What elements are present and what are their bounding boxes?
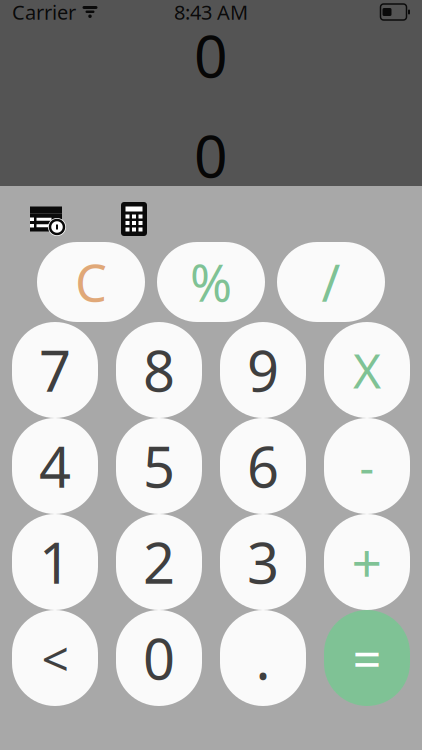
staticText: 7 xyxy=(39,333,71,407)
button[interactable]: . xyxy=(220,610,306,706)
button[interactable]: 9 xyxy=(220,322,306,418)
button[interactable]: 8 xyxy=(116,322,202,418)
button[interactable]: = xyxy=(324,610,410,706)
button[interactable]: 0 xyxy=(116,610,202,706)
staticText: 0 xyxy=(143,621,175,695)
staticText: + xyxy=(351,527,382,597)
staticText: C xyxy=(75,248,107,316)
button[interactable]: 6 xyxy=(220,418,306,514)
button[interactable]: History xyxy=(26,202,66,236)
button[interactable]: % xyxy=(157,242,265,322)
button[interactable]: C xyxy=(37,242,145,322)
staticText: % xyxy=(190,248,232,316)
staticText: 4 xyxy=(39,429,71,503)
button[interactable]: X xyxy=(324,322,410,418)
button[interactable]: < xyxy=(12,610,98,706)
staticText: 9 xyxy=(247,333,279,407)
staticText: 3 xyxy=(247,525,279,599)
staticText: 6 xyxy=(247,429,279,503)
staticText: 8:43 AM xyxy=(174,0,248,25)
staticText: Carrier xyxy=(12,0,76,25)
staticText: 2 xyxy=(143,525,175,599)
button[interactable]: 4 xyxy=(12,418,98,514)
button[interactable]: 3 xyxy=(220,514,306,610)
staticText: . xyxy=(255,621,270,695)
button[interactable]: - xyxy=(324,418,410,514)
staticText: 0 xyxy=(194,16,228,94)
button[interactable]: 2 xyxy=(116,514,202,610)
staticText: 0 xyxy=(194,116,228,194)
staticText: < xyxy=(41,626,68,690)
staticText: 8 xyxy=(143,333,175,407)
button[interactable]: 5 xyxy=(116,418,202,514)
staticText: = xyxy=(352,624,381,692)
button[interactable]: 7 xyxy=(12,322,98,418)
staticText: / xyxy=(321,248,340,316)
staticText: X xyxy=(353,338,381,402)
button[interactable]: / xyxy=(277,242,385,322)
staticText: 1 xyxy=(39,525,71,599)
button[interactable]: Calculator xyxy=(114,202,154,236)
staticText: - xyxy=(359,436,374,496)
button[interactable]: 1 xyxy=(12,514,98,610)
staticText: 5 xyxy=(143,429,175,503)
button[interactable]: + xyxy=(324,514,410,610)
